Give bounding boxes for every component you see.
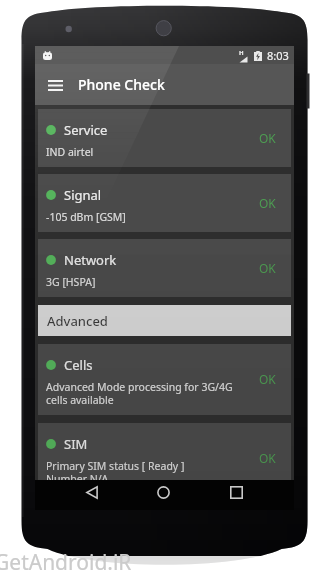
staticText: OK [259,195,276,211]
staticText: OK [259,130,276,146]
staticText: OK [259,371,276,387]
staticText: Network [64,251,117,269]
staticText: Phone Check [78,75,165,94]
button[interactable]: Back [74,480,110,510]
staticText: Advanced Mode processing for 3G/4G cells… [46,380,233,407]
button[interactable]: Signal [38,174,291,232]
staticText: Signal [64,186,102,204]
staticText: H [239,49,244,57]
button[interactable]: Network [38,239,291,297]
button[interactable]: Home [145,480,181,510]
button[interactable]: Advanced [38,305,291,336]
staticText: Cells [64,356,93,374]
staticText: Service [64,121,108,139]
button[interactable]: Recent apps [218,480,254,510]
staticText: Primary SIM status [ Ready ] Number N/A [46,459,185,486]
staticText: SIM [64,435,88,453]
button[interactable]: SIM [38,423,291,494]
staticText: IND airtel [46,145,94,159]
button[interactable]: Service [38,109,291,167]
button[interactable]: Cells [38,344,291,415]
staticText: OK [259,450,276,466]
staticText: Advanced [47,312,108,330]
staticText: GetAndroid.iR [0,548,132,577]
button[interactable]: Open navigation menu [43,73,67,97]
staticText: 8:03 [267,48,289,63]
staticText: OK [259,260,276,276]
staticText: 3G [HSPA] [46,275,96,289]
staticText: -105 dBm [GSM] [46,210,126,224]
